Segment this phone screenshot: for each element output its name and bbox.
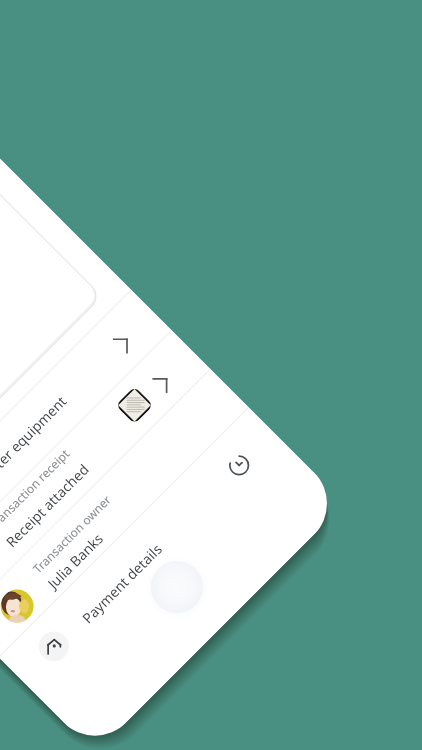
staticText: Receipt attached — [2, 460, 93, 551]
staticText: Payment details — [78, 539, 166, 627]
staticText: Transaction receipt — [0, 445, 73, 533]
button[interactable]: Julia Banks avatar — [0, 368, 248, 657]
button[interactable]: Computer equipment — [0, 289, 171, 580]
button[interactable]: Transaction receipt — [0, 330, 210, 619]
button[interactable]: Open — [145, 370, 175, 400]
button[interactable]: Payment method — [0, 407, 287, 696]
button[interactable]: Add transaction — [140, 550, 214, 624]
other: Julia Banks avatar — [0, 583, 40, 629]
button[interactable] — [0, 55, 100, 508]
staticText: Julia Banks — [43, 529, 107, 593]
button[interactable]: Open — [105, 331, 135, 361]
staticText: Transaction owner — [29, 492, 114, 576]
staticText: Computer equipment — [0, 391, 71, 506]
button[interactable]: History — [224, 450, 255, 481]
button[interactable]: Payment method — [33, 625, 75, 668]
button[interactable]: Receipt image — [118, 389, 151, 421]
